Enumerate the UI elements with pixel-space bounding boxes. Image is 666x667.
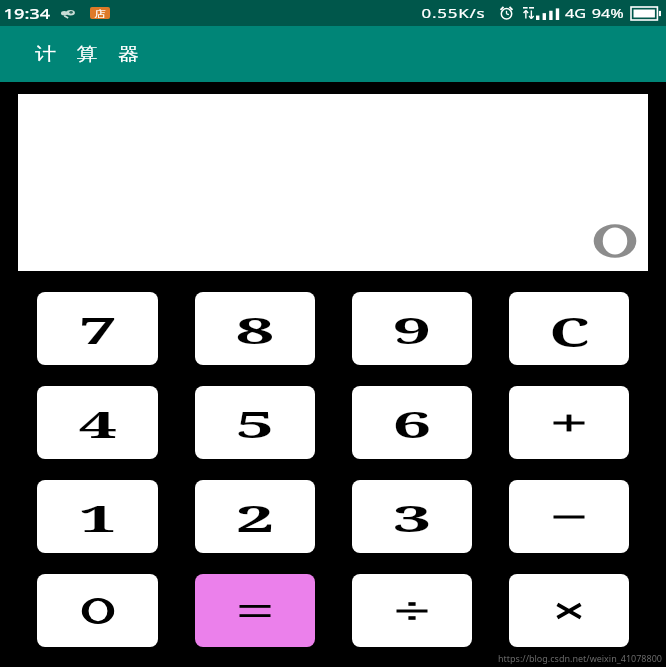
button[interactable]: 7 bbox=[37, 292, 158, 365]
staticText: 2 bbox=[235, 494, 275, 533]
staticText: 1 bbox=[78, 494, 118, 533]
button[interactable]: Divide bbox=[352, 574, 472, 647]
button[interactable]: 2 bbox=[195, 480, 315, 553]
staticText: 6 bbox=[392, 400, 432, 439]
button[interactable]: 0 bbox=[37, 574, 158, 647]
button[interactable]: 5 bbox=[195, 386, 315, 459]
staticText: 9 bbox=[392, 306, 432, 345]
button[interactable]: 6 bbox=[352, 386, 472, 459]
staticText: 3 bbox=[392, 494, 432, 533]
button[interactable]: 4 bbox=[37, 386, 158, 459]
staticText: 店 bbox=[94, 8, 106, 18]
button[interactable]: C bbox=[509, 292, 629, 365]
staticText: https://blog.csdn.net/weixin_41078800 bbox=[498, 652, 662, 664]
staticText: 0.55K/s bbox=[421, 4, 486, 22]
button[interactable]: Multiply bbox=[509, 574, 629, 647]
staticText: 4G bbox=[565, 4, 586, 22]
button[interactable] bbox=[18, 94, 648, 271]
staticText: 94% bbox=[592, 4, 624, 22]
staticText: 8 bbox=[235, 306, 275, 345]
staticText: 5 bbox=[235, 400, 275, 439]
button[interactable]: 9 bbox=[352, 292, 472, 365]
staticText: 7 bbox=[78, 306, 118, 345]
button[interactable]: Equals bbox=[195, 574, 315, 647]
button[interactable]: 8 bbox=[195, 292, 315, 365]
button[interactable]: 1 bbox=[37, 480, 158, 553]
staticText: 19:34 bbox=[4, 4, 50, 23]
button[interactable]: Plus bbox=[509, 386, 629, 459]
staticText: 4 bbox=[78, 400, 118, 439]
staticText: 计算器 bbox=[35, 43, 160, 65]
staticText: C bbox=[549, 303, 590, 348]
button[interactable]: Minus bbox=[509, 480, 629, 553]
button[interactable]: 3 bbox=[352, 480, 472, 553]
